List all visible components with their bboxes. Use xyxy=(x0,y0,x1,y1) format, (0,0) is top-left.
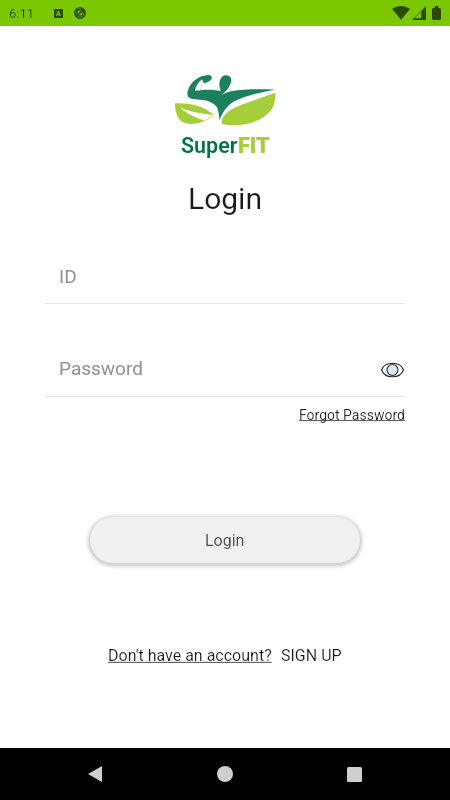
staticText: A xyxy=(56,10,61,18)
button[interactable]: Back xyxy=(75,754,115,794)
staticText: 6:11 xyxy=(9,6,35,21)
button[interactable]: Forgot Password xyxy=(299,407,405,423)
staticText: Super xyxy=(181,133,238,158)
button[interactable]: Don't have an account? xyxy=(108,646,272,665)
staticText: Login xyxy=(188,181,262,216)
button[interactable]: Recents xyxy=(334,754,374,794)
button[interactable]: Home xyxy=(205,754,245,794)
staticText: Login xyxy=(205,531,245,550)
button[interactable]: Login xyxy=(90,517,360,563)
staticText: Password xyxy=(59,357,143,379)
staticText: ID xyxy=(59,265,77,287)
button[interactable]: Show password xyxy=(381,356,404,384)
staticText: FIT xyxy=(238,133,270,158)
button[interactable]: SIGN UP xyxy=(281,646,342,665)
